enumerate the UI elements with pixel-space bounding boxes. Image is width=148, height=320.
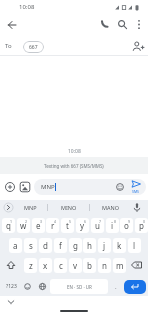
staticText: c xyxy=(59,260,63,271)
staticText: 8 xyxy=(114,219,117,224)
staticText: e xyxy=(36,220,41,231)
button[interactable]: EN · SD · UR xyxy=(50,279,108,294)
staticText: 3 xyxy=(40,219,43,224)
staticText: b xyxy=(87,260,92,271)
button[interactable]: z xyxy=(24,258,37,273)
button[interactable]: n xyxy=(98,258,111,273)
button[interactable]: e xyxy=(32,218,45,233)
staticText: a xyxy=(13,240,18,251)
staticText: h xyxy=(87,240,92,251)
button[interactable]: w xyxy=(17,218,30,233)
staticText: s xyxy=(29,240,33,251)
button[interactable]: d xyxy=(39,238,52,253)
staticText: 10:08 xyxy=(19,3,35,11)
button[interactable]: q xyxy=(2,218,15,233)
button[interactable] xyxy=(19,181,31,193)
staticText: 6 xyxy=(84,219,87,224)
button[interactable] xyxy=(2,258,20,273)
staticText: 667 xyxy=(29,44,38,51)
button[interactable]: MNP xyxy=(34,179,146,195)
staticText: o xyxy=(124,220,129,231)
button[interactable]: v xyxy=(69,258,82,273)
staticText: x xyxy=(43,260,48,271)
staticText: EN · SD · UR xyxy=(67,284,92,290)
button[interactable] xyxy=(3,202,14,213)
staticText: 0 xyxy=(143,219,146,224)
button[interactable]: h xyxy=(83,238,96,253)
staticText: SMS xyxy=(132,189,140,194)
button[interactable]: j xyxy=(98,238,111,253)
button[interactable] xyxy=(128,258,146,273)
staticText: q xyxy=(6,220,11,231)
staticText: . xyxy=(115,283,117,291)
button[interactable]: p xyxy=(135,218,148,233)
staticText: v xyxy=(73,260,78,271)
button[interactable]: ?123 xyxy=(2,279,20,294)
button[interactable] xyxy=(36,279,49,294)
button[interactable]: t xyxy=(61,218,74,233)
staticText: 9 xyxy=(128,219,131,224)
button[interactable]: MANO xyxy=(97,200,123,214)
button[interactable] xyxy=(117,19,128,30)
staticText: g xyxy=(73,240,78,251)
button[interactable] xyxy=(133,18,145,31)
button[interactable]: x xyxy=(39,258,52,273)
staticText: 10:08 xyxy=(68,148,81,155)
button[interactable]: c xyxy=(54,258,67,273)
button[interactable]: 667 xyxy=(23,41,44,53)
staticText: i xyxy=(111,220,114,231)
staticText: n xyxy=(102,260,107,271)
button[interactable]: MINO xyxy=(56,200,82,214)
staticText: ?123 xyxy=(6,283,17,290)
button[interactable]: i xyxy=(106,218,119,233)
staticText: MNP xyxy=(24,204,37,211)
button[interactable]: SMS xyxy=(129,180,144,194)
staticText: MANO xyxy=(102,204,119,211)
staticText: d xyxy=(43,240,48,251)
staticText: To xyxy=(5,42,12,50)
staticText: k xyxy=(117,240,122,251)
staticText: 7 xyxy=(99,219,102,224)
button[interactable]: u xyxy=(91,218,104,233)
staticText: r xyxy=(51,220,55,231)
staticText: 1 xyxy=(10,219,13,224)
staticText: p xyxy=(139,220,144,231)
staticText: l xyxy=(133,240,136,251)
button[interactable]: a xyxy=(9,238,22,253)
button[interactable] xyxy=(124,280,146,294)
button[interactable] xyxy=(99,19,110,30)
staticText: 2 xyxy=(25,219,28,224)
button[interactable]: s xyxy=(24,238,37,253)
button[interactable]: y xyxy=(76,218,89,233)
button[interactable]: m xyxy=(113,258,126,273)
staticText: m xyxy=(116,260,124,271)
button[interactable]: . xyxy=(110,279,122,294)
button[interactable] xyxy=(4,181,16,193)
button[interactable] xyxy=(21,279,34,294)
staticText: t xyxy=(66,220,69,231)
staticText: u xyxy=(95,220,100,231)
staticText: w xyxy=(20,220,27,231)
staticText: y xyxy=(80,220,85,231)
staticText: z xyxy=(29,260,33,271)
button[interactable]: f xyxy=(54,238,67,253)
staticText: j xyxy=(103,240,106,251)
button[interactable]: b xyxy=(83,258,96,273)
button[interactable]: k xyxy=(113,238,126,253)
button[interactable]: r xyxy=(46,218,59,233)
button[interactable] xyxy=(5,18,19,32)
staticText: 5 xyxy=(69,219,72,224)
button[interactable] xyxy=(131,202,143,214)
button[interactable]: l xyxy=(128,238,141,253)
staticText: Texting with 667 (SMS/MMS) xyxy=(44,163,104,169)
button[interactable]: MNP xyxy=(18,200,42,214)
button[interactable] xyxy=(132,41,145,53)
staticText: 4 xyxy=(54,219,57,224)
button[interactable]: g xyxy=(69,238,82,253)
staticText: f xyxy=(59,240,62,251)
button[interactable]: o xyxy=(120,218,133,233)
staticText: MINO xyxy=(61,204,77,211)
staticText: MNP xyxy=(41,183,55,191)
button[interactable] xyxy=(5,297,17,307)
